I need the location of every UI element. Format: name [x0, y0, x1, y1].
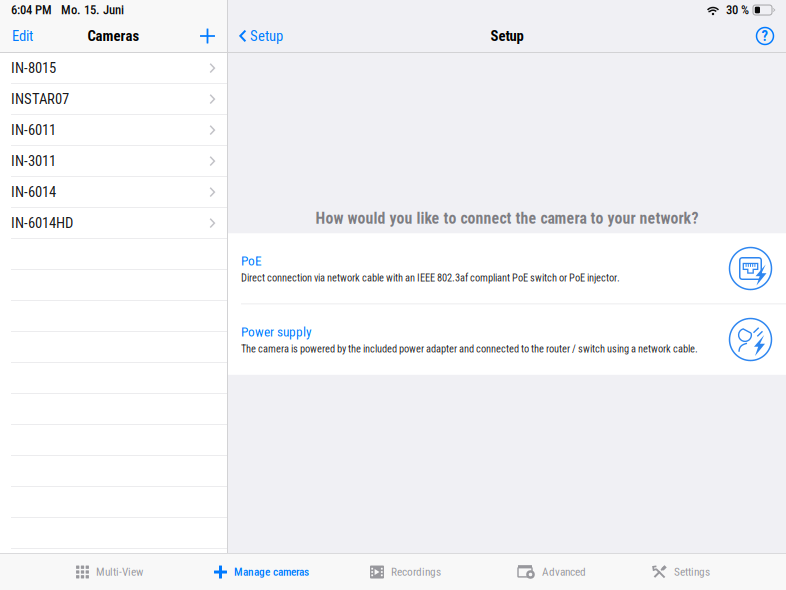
staticText: How would you like to connect the camera… [315, 209, 698, 227]
staticText: IN-6014 [11, 183, 56, 201]
staticText: IN-6011 [11, 121, 56, 139]
staticText: Recordings [391, 565, 441, 579]
staticText: PoE [241, 253, 262, 269]
button[interactable]: INSTAR07 [0, 84, 227, 115]
staticText: Advanced [542, 565, 586, 579]
button[interactable]: IN-3011 [0, 146, 227, 177]
staticText: Cameras [87, 27, 139, 45]
button[interactable]: Power supply [228, 304, 786, 374]
button[interactable]: Help [747, 20, 786, 52]
staticText: IN-8015 [11, 59, 56, 77]
staticText: 6:04 PM [11, 3, 52, 17]
staticText: Setup [250, 27, 283, 45]
button[interactable]: PoE [228, 233, 786, 303]
staticText: INSTAR07 [11, 90, 69, 108]
staticText: IN-3011 [11, 152, 56, 170]
button[interactable]: Edit [0, 20, 43, 52]
button[interactable]: IN-8015 [0, 53, 227, 84]
button[interactable]: Advanced [518, 554, 586, 590]
button[interactable]: IN-6011 [0, 115, 227, 146]
button[interactable]: IN-6014HD [0, 208, 227, 239]
button[interactable]: Multi-View [76, 554, 143, 590]
staticText: Settings [674, 565, 710, 579]
button[interactable]: IN-6014 [0, 177, 227, 208]
staticText: The camera is powered by the included po… [241, 343, 698, 355]
staticText: ? [761, 27, 768, 45]
staticText: Setup [490, 27, 523, 45]
button[interactable]: Add camera [190, 20, 227, 52]
staticText: Edit [12, 27, 33, 45]
button[interactable]: Manage cameras [214, 554, 309, 590]
button[interactable]: Settings [652, 554, 710, 590]
staticText: Multi-View [96, 565, 143, 579]
staticText: Manage cameras [234, 565, 309, 579]
staticText: IN-6014HD [11, 214, 73, 232]
staticText: 30 % [726, 3, 749, 17]
button[interactable]: Setup [228, 20, 291, 52]
button[interactable]: Recordings [370, 554, 441, 590]
staticText: Direct connection via network cable with… [241, 272, 620, 284]
staticText: Mo. 15. Juni [61, 3, 124, 17]
staticText: Power supply [241, 324, 312, 340]
